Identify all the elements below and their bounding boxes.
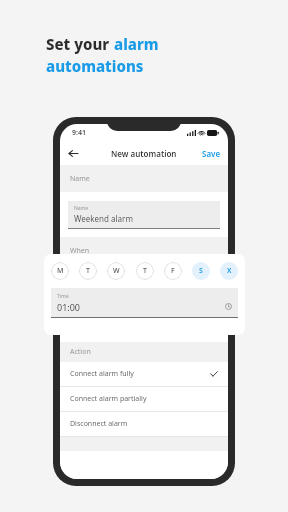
staticText: M bbox=[57, 266, 64, 276]
button[interactable]: F bbox=[164, 262, 182, 280]
staticText: Action bbox=[70, 347, 91, 357]
staticText: automations bbox=[46, 56, 144, 76]
staticText: Disconnect alarm bbox=[70, 419, 128, 429]
staticText: F bbox=[171, 266, 175, 276]
staticText: Time bbox=[57, 293, 69, 300]
button[interactable]: X bbox=[220, 262, 238, 280]
staticText: Save bbox=[202, 148, 221, 159]
staticText: S bbox=[199, 266, 203, 276]
button[interactable]: Connect alarm partially bbox=[60, 387, 228, 411]
button[interactable]: T bbox=[79, 262, 97, 280]
button[interactable]: Connect alarm fully bbox=[60, 362, 228, 386]
staticText: Name bbox=[74, 205, 89, 212]
staticText: T bbox=[86, 266, 90, 276]
button[interactable]: T bbox=[136, 262, 154, 280]
button[interactable]: Save bbox=[195, 143, 228, 164]
staticText: When bbox=[70, 246, 90, 256]
staticText: Set your bbox=[46, 34, 114, 54]
staticText: Connect alarm partially bbox=[70, 394, 147, 404]
button[interactable]: Back bbox=[65, 145, 82, 162]
staticText: Connect alarm fully bbox=[70, 369, 134, 379]
staticText: X bbox=[227, 266, 232, 276]
staticText: Name bbox=[70, 174, 90, 184]
button[interactable]: Time bbox=[51, 288, 238, 318]
staticText: 01:00 bbox=[57, 301, 81, 313]
button[interactable]: Disconnect alarm bbox=[60, 412, 228, 436]
button[interactable]: Name bbox=[68, 201, 220, 229]
staticText: Weekend alarm bbox=[74, 213, 133, 224]
button[interactable]: W bbox=[107, 262, 125, 280]
staticText: New automation bbox=[111, 148, 177, 159]
button[interactable]: S bbox=[192, 262, 210, 280]
staticText: W bbox=[113, 266, 120, 276]
staticText: 9:41 bbox=[72, 128, 86, 138]
button[interactable]: M bbox=[51, 262, 69, 280]
staticText: alarm bbox=[114, 34, 159, 54]
button[interactable]: Pick time bbox=[224, 302, 233, 311]
staticText: T bbox=[143, 266, 147, 276]
